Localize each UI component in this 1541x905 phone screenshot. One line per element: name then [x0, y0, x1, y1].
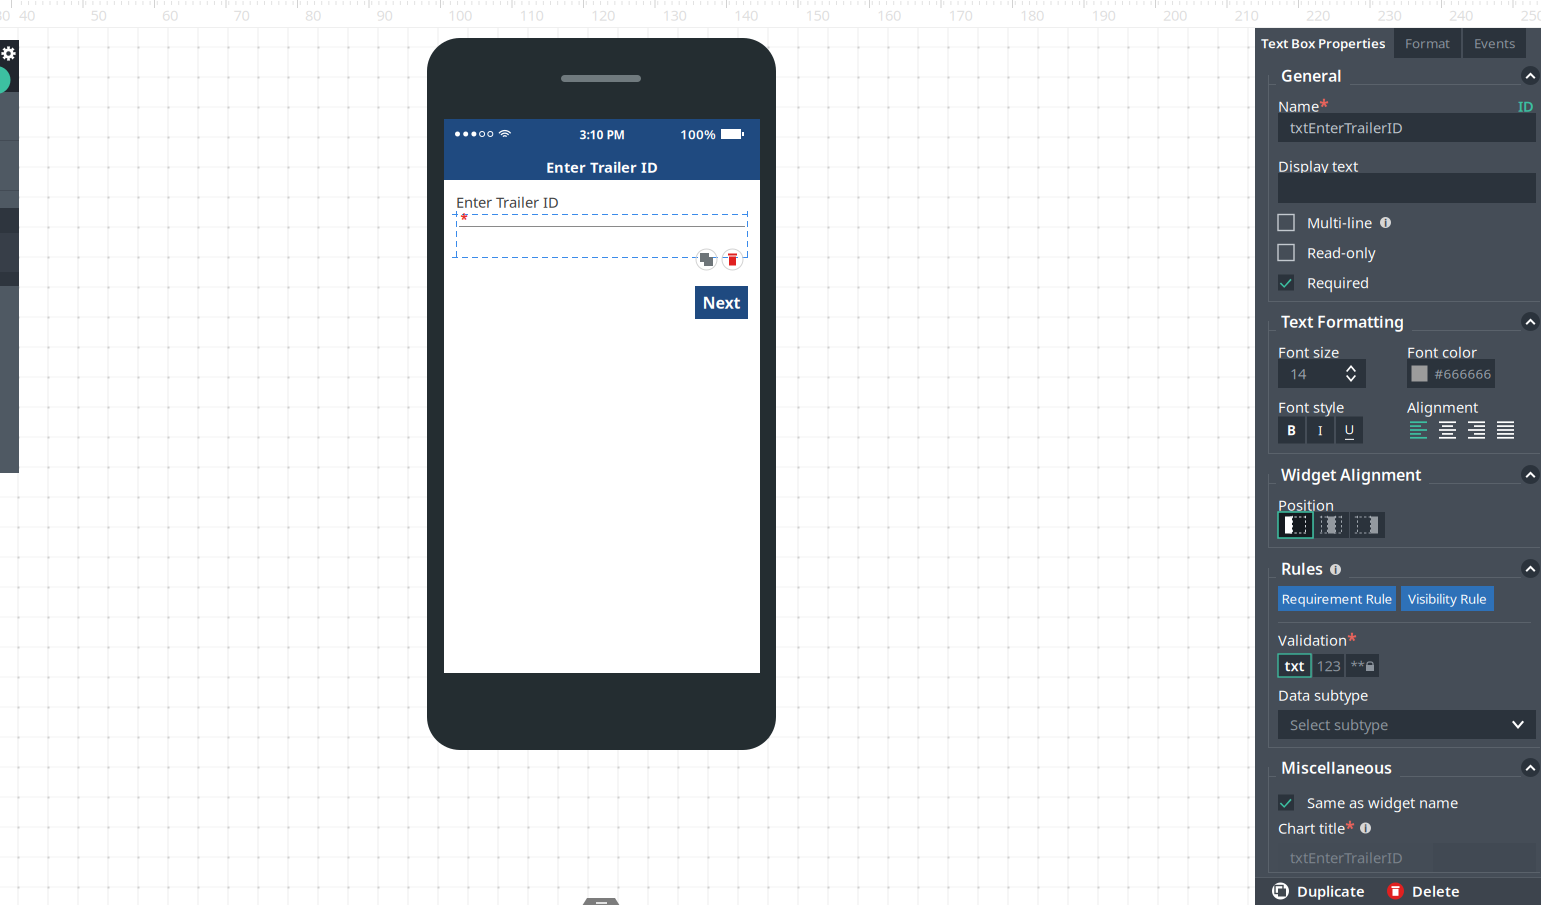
button[interactable]: Format: [1394, 28, 1461, 58]
button[interactable]: Duplicate: [1272, 877, 1365, 905]
button[interactable]: Collapse General: [1521, 66, 1540, 85]
staticText: 210: [1234, 5, 1258, 25]
staticText: Alignment: [1407, 397, 1478, 417]
staticText: Font style: [1278, 397, 1344, 417]
button[interactable]: Widget position option: [1278, 512, 1313, 538]
button[interactable]: **: [1346, 654, 1379, 677]
button[interactable]: Required: [1278, 273, 1534, 291]
button[interactable]: Alignment option: [1404, 420, 1433, 440]
staticText: 160: [877, 5, 901, 25]
staticText: I: [1318, 421, 1323, 439]
staticText: 70: [233, 5, 249, 25]
staticText: *: [460, 210, 467, 228]
staticText: Name: [1278, 96, 1319, 116]
button[interactable]: 14: [1278, 359, 1366, 388]
staticText: i: [1334, 562, 1337, 577]
staticText: txt: [1284, 656, 1304, 675]
staticText: Position: [1278, 495, 1334, 515]
button[interactable]: Multi-line: [1278, 213, 1534, 231]
staticText: 30: [0, 5, 10, 25]
staticText: Multi-line: [1307, 213, 1372, 232]
button[interactable]: Alignment option: [1491, 420, 1520, 440]
staticText: Next: [702, 292, 740, 313]
staticText: Enter Trailer ID: [546, 157, 658, 177]
staticText: Read-only: [1307, 243, 1375, 262]
button[interactable]: Visibility Rule: [1401, 586, 1494, 611]
staticText: Same as widget name: [1307, 793, 1458, 812]
button[interactable]: Delete field: [722, 249, 743, 270]
staticText: 14: [1290, 364, 1306, 383]
staticText: *: [1345, 816, 1354, 839]
button[interactable]: #666666: [1403, 359, 1498, 388]
button[interactable]: Alignment option: [1433, 420, 1462, 440]
staticText: 123: [1316, 656, 1340, 675]
button[interactable]: Widget position option: [1350, 512, 1385, 538]
staticText: Delete: [1412, 881, 1460, 901]
staticText: txtEnterTrailerID: [1290, 118, 1403, 137]
button[interactable]: U: [1336, 416, 1363, 443]
button[interactable]: Read-only: [1278, 243, 1534, 261]
button[interactable]: I: [1307, 416, 1334, 443]
staticText: i: [1384, 215, 1387, 230]
staticText: 190: [1091, 5, 1115, 25]
button[interactable]: Alignment option: [1462, 420, 1491, 440]
button[interactable]: txt: [1278, 654, 1311, 677]
staticText: i: [1364, 821, 1367, 835]
button[interactable]: Collapse Rules: [1521, 559, 1540, 578]
staticText: 250: [1520, 5, 1541, 25]
staticText: 220: [1306, 5, 1330, 25]
staticText: Chart title: [1278, 818, 1345, 838]
staticText: Font size: [1278, 342, 1339, 362]
button[interactable]: Collapse Text Formatting: [1521, 312, 1540, 331]
staticText: Data subtype: [1278, 685, 1368, 705]
staticText: 200: [1163, 5, 1187, 25]
staticText: 180: [1020, 5, 1044, 25]
staticText: txtEnterTrailerID: [1290, 848, 1403, 867]
button[interactable]: Next: [695, 286, 748, 319]
staticText: U: [1344, 420, 1354, 438]
staticText: B: [1287, 421, 1296, 439]
button[interactable]: Expand bottom panel: [582, 898, 622, 905]
staticText: Text Formatting: [1281, 311, 1404, 332]
button[interactable]: 123: [1313, 654, 1344, 677]
button[interactable]: Delete: [1387, 877, 1460, 905]
staticText: 3:10 PM: [579, 126, 624, 142]
staticText: *: [1319, 94, 1328, 117]
staticText: Required: [1307, 273, 1369, 292]
staticText: Events: [1474, 34, 1515, 52]
staticText: 150: [805, 5, 829, 25]
staticText: Select subtype: [1290, 715, 1388, 734]
staticText: 50: [90, 5, 106, 25]
button[interactable]: Text Box Properties: [1255, 28, 1392, 58]
staticText: 90: [376, 5, 392, 25]
button[interactable]: Collapse Widget Alignment: [1521, 465, 1540, 484]
staticText: *: [1347, 628, 1356, 651]
staticText: Text Box Properties: [1261, 34, 1386, 52]
staticText: Validation: [1278, 630, 1347, 650]
staticText: 110: [519, 5, 543, 25]
staticText: Display text: [1278, 156, 1358, 176]
staticText: 140: [734, 5, 758, 25]
staticText: Widget Alignment: [1281, 464, 1421, 485]
staticText: Font color: [1407, 342, 1477, 362]
staticText: Requirement Rule: [1281, 590, 1392, 607]
staticText: 120: [591, 5, 615, 25]
button[interactable]: Same as widget name: [1278, 793, 1534, 811]
staticText: 100%: [680, 125, 716, 143]
button[interactable]: Select subtype: [1278, 710, 1536, 739]
button[interactable]: Collapse Miscellaneous: [1521, 758, 1540, 777]
staticText: 130: [662, 5, 686, 25]
staticText: Duplicate: [1297, 881, 1365, 901]
button[interactable]: Duplicate field: [696, 249, 717, 270]
button[interactable]: B: [1278, 416, 1305, 443]
staticText: Format: [1405, 34, 1450, 52]
button[interactable]: Requirement Rule: [1278, 586, 1396, 611]
staticText: 60: [162, 5, 178, 25]
staticText: Visibility Rule: [1408, 590, 1487, 607]
button[interactable]: Events: [1463, 28, 1526, 58]
staticText: General: [1281, 65, 1342, 86]
staticText: Enter Trailer ID: [456, 192, 559, 212]
button[interactable]: Widget position option: [1314, 512, 1349, 538]
staticText: 170: [948, 5, 972, 25]
staticText: ID: [1518, 96, 1534, 116]
